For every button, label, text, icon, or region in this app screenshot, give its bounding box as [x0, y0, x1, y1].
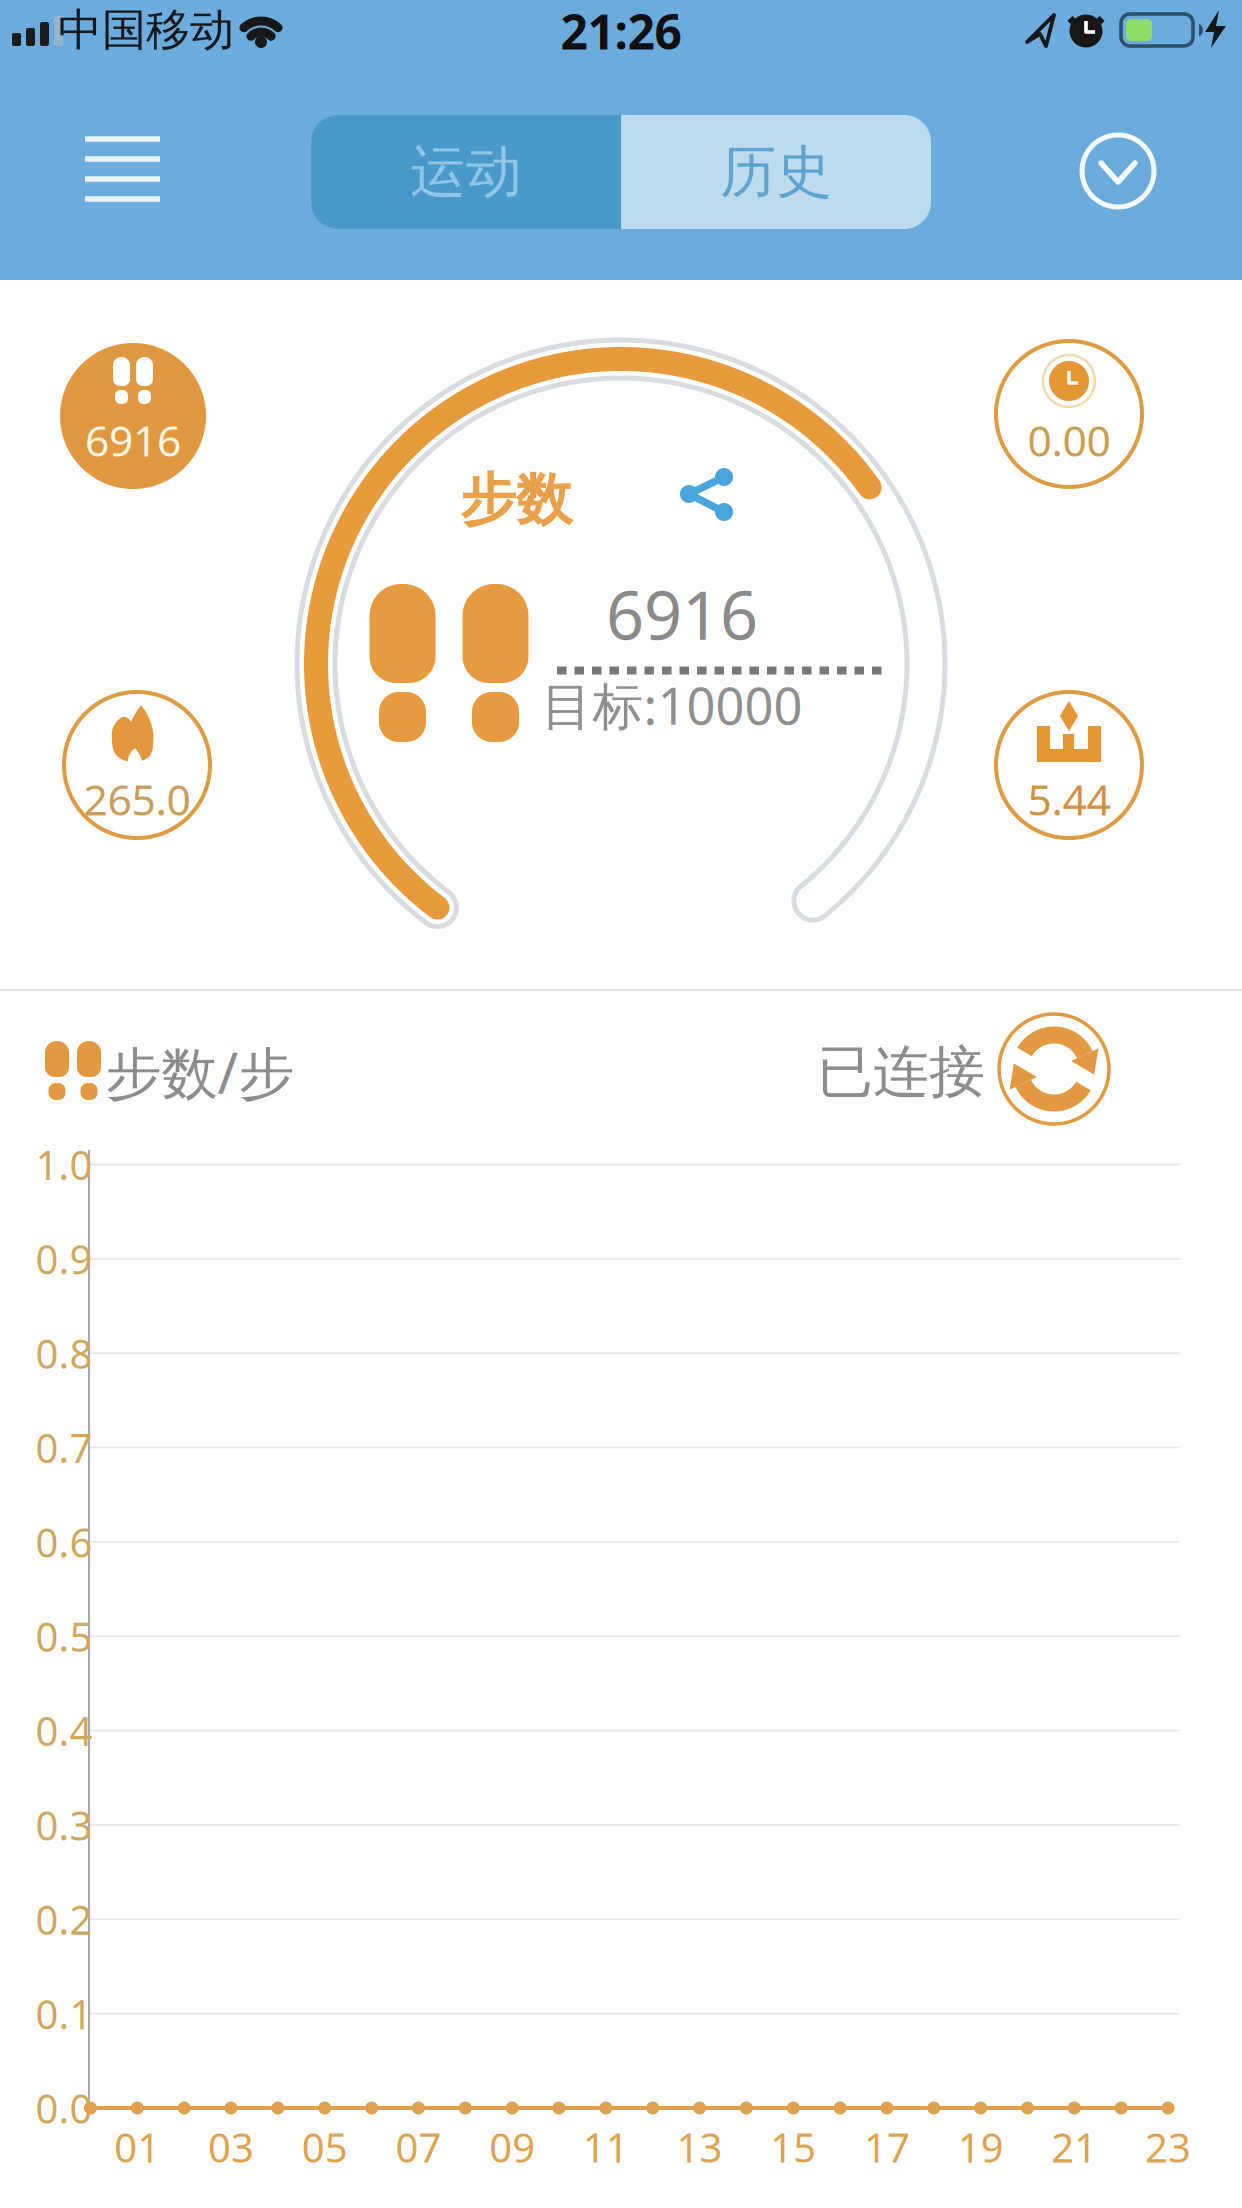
button[interactable]: 运动 — [311, 115, 621, 229]
staticText: 0.4 — [35, 1704, 92, 1757]
staticText: 05 — [302, 2120, 348, 2173]
staticText: 0.7 — [35, 1421, 92, 1474]
staticText: 0.5 — [35, 1610, 92, 1663]
staticText: 17 — [864, 2120, 910, 2173]
button[interactable]: Collapse — [1073, 126, 1163, 216]
staticText: 5.44 — [1027, 771, 1110, 827]
staticText: 运动 — [410, 138, 522, 206]
staticText: 0.9 — [35, 1232, 92, 1285]
staticText: 265.0 — [83, 771, 190, 827]
staticText: 01 — [114, 2120, 160, 2173]
button[interactable]: Menu — [72, 129, 172, 209]
staticText: 0.8 — [35, 1327, 92, 1380]
staticText: 6916 — [85, 412, 181, 468]
staticText: 0.3 — [35, 1798, 92, 1851]
staticText: 21:26 — [560, 0, 681, 64]
staticText: 步数 — [460, 465, 572, 535]
staticText: 0.1 — [35, 1987, 92, 2040]
staticText: 13 — [677, 2120, 723, 2173]
staticText: 15 — [770, 2120, 816, 2173]
staticText: 23 — [1145, 2120, 1191, 2173]
staticText: 中国移动 — [58, 3, 234, 57]
staticText: 03 — [208, 2120, 254, 2173]
staticText: 0.2 — [35, 1893, 92, 1946]
staticText: 历史 — [720, 138, 832, 206]
staticText: 已连接 — [817, 1038, 985, 1106]
staticText: 09 — [489, 2120, 535, 2173]
staticText: 07 — [395, 2120, 441, 2173]
button[interactable]: Sync — [997, 1012, 1111, 1126]
staticText: 步数/步 — [105, 1035, 294, 1109]
staticText: 目标:10000 — [541, 671, 802, 739]
button[interactable]: Share — [666, 452, 748, 536]
staticText: 0.6 — [35, 1515, 92, 1568]
staticText: 0.0 — [35, 2081, 92, 2134]
button[interactable]: 历史 — [621, 115, 931, 229]
staticText: 1.0 — [35, 1138, 92, 1191]
staticText: 11 — [583, 2120, 629, 2173]
staticText: 21 — [1051, 2120, 1097, 2173]
staticText: 0.00 — [1027, 412, 1110, 468]
staticText: 6916 — [606, 570, 758, 658]
staticText: 19 — [958, 2120, 1004, 2173]
